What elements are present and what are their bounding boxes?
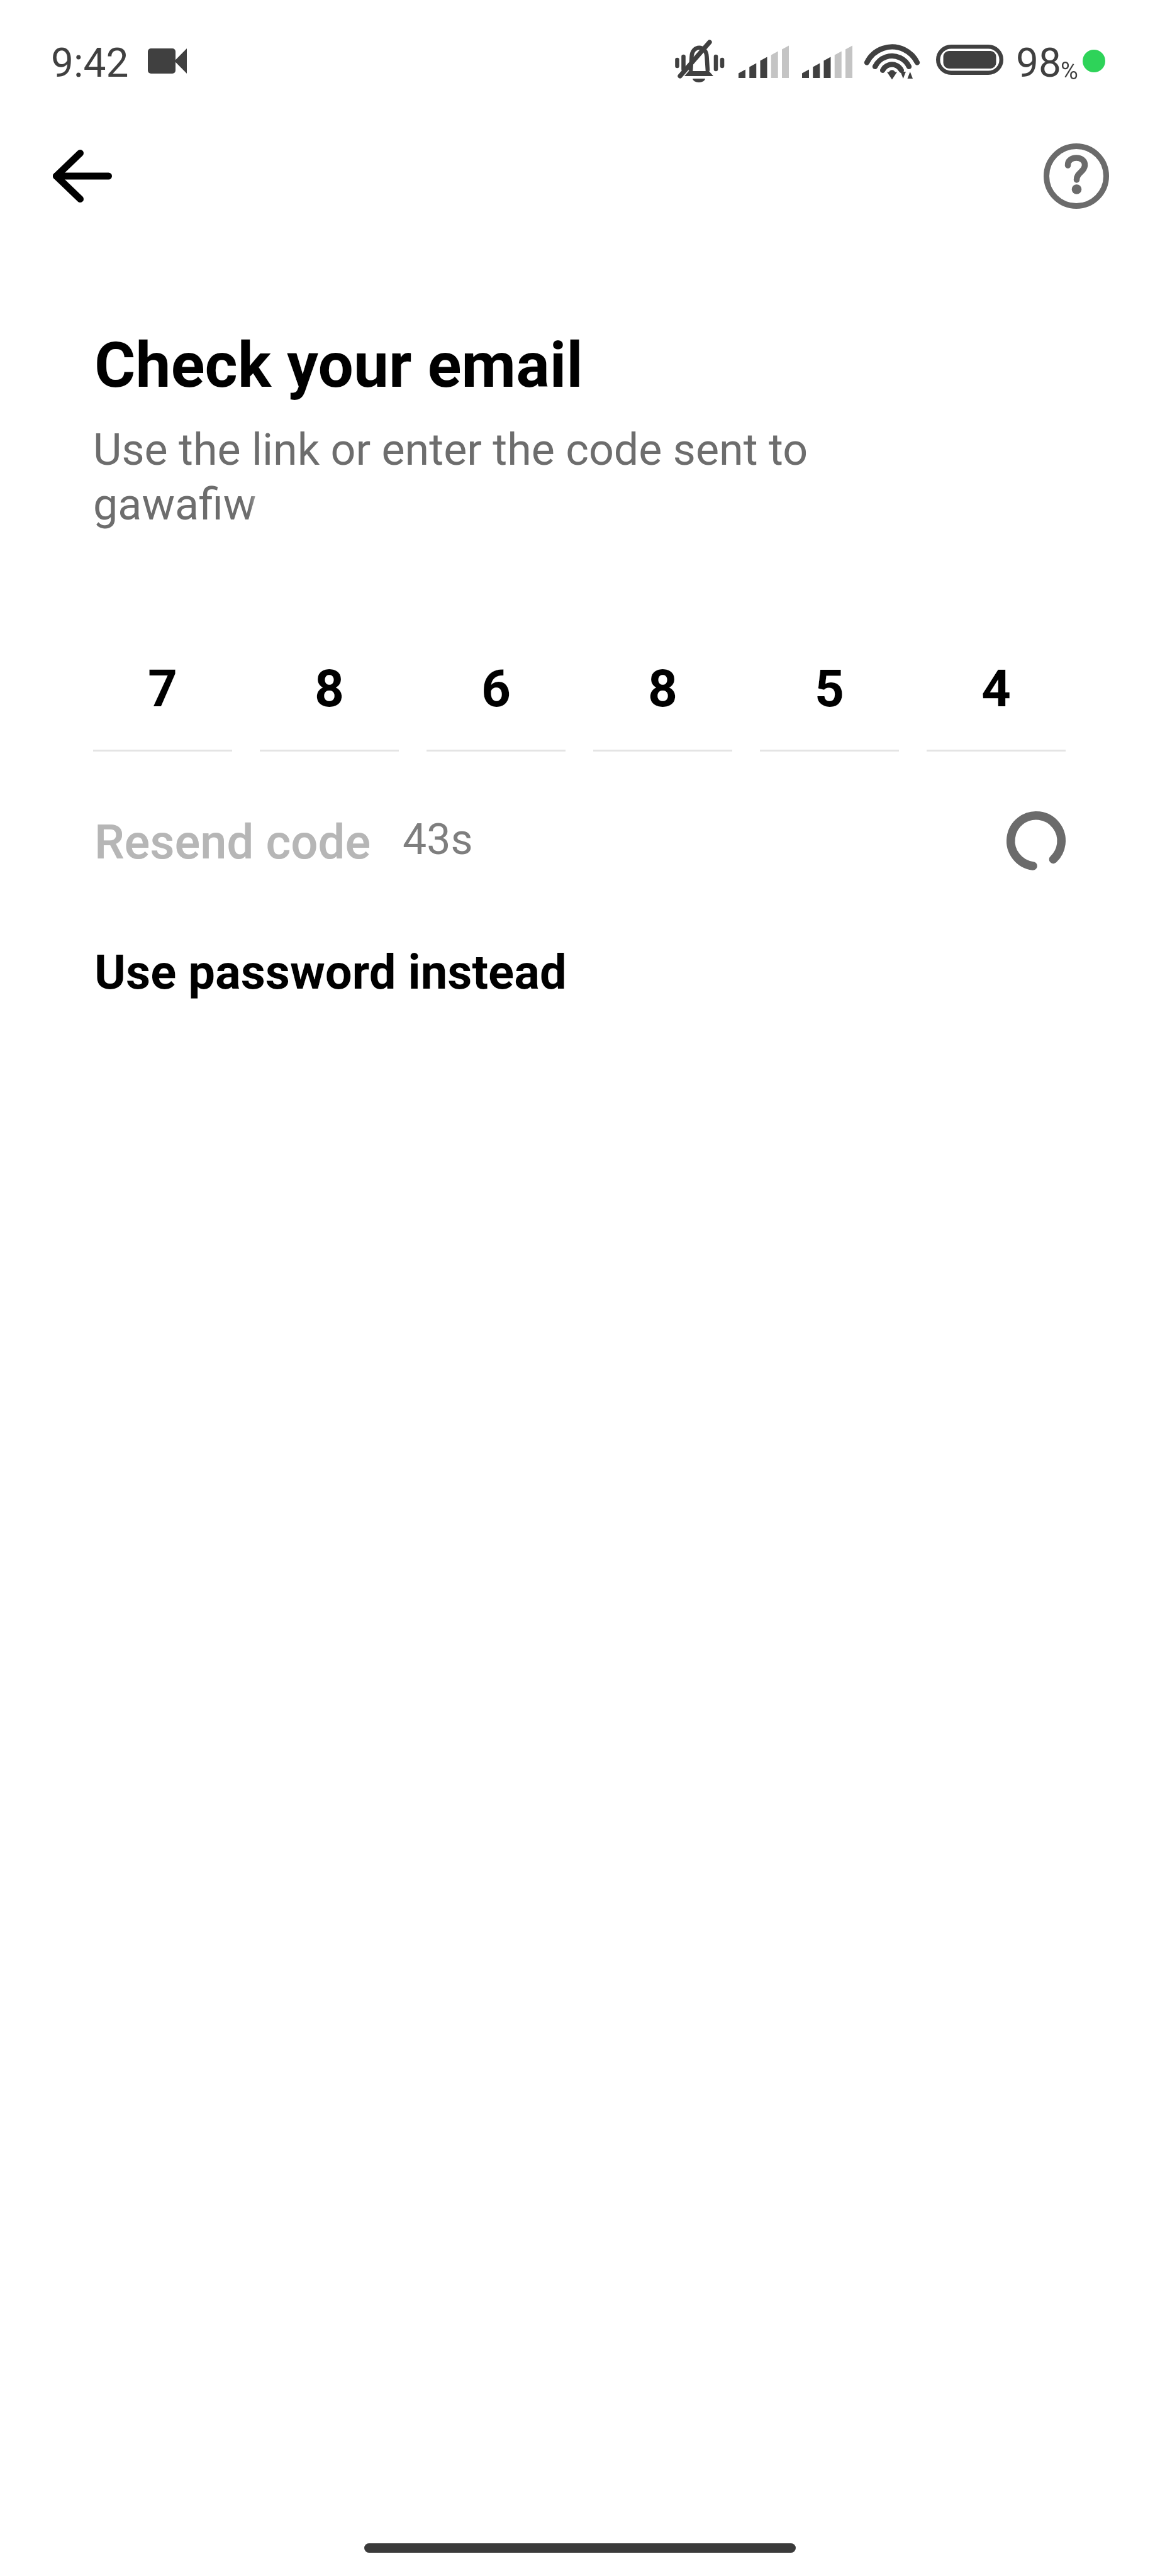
staticText: Use password instead — [94, 944, 567, 1001]
staticText: Use the link or enter the code sent to g… — [93, 421, 848, 531]
button[interactable]: 8 — [593, 654, 732, 752]
staticText: 7 — [148, 662, 178, 718]
button[interactable]: Use password instead — [82, 925, 579, 1019]
button[interactable]: Back — [41, 135, 124, 218]
button[interactable]: Resend code — [82, 801, 486, 877]
staticText: % — [1061, 58, 1078, 85]
staticText: 4 — [981, 662, 1012, 718]
button[interactable]: 6 — [427, 654, 566, 752]
staticText: Check your email — [94, 332, 583, 401]
other: Loading — [1000, 805, 1072, 877]
button[interactable]: Help — [1035, 135, 1118, 218]
button[interactable]: 4 — [927, 654, 1066, 752]
staticText: Resend code — [94, 814, 371, 864]
button[interactable]: 7 — [93, 654, 232, 752]
staticText: 9:42 — [51, 42, 129, 86]
staticText: 8 — [315, 662, 345, 718]
staticText: 98 — [1016, 42, 1061, 86]
staticText: 5 — [815, 662, 845, 718]
staticText: 6 — [481, 662, 511, 718]
staticText: 43s — [403, 814, 473, 864]
button[interactable]: 8 — [260, 654, 399, 752]
button[interactable]: 5 — [760, 654, 899, 752]
staticText: 8 — [648, 662, 678, 718]
